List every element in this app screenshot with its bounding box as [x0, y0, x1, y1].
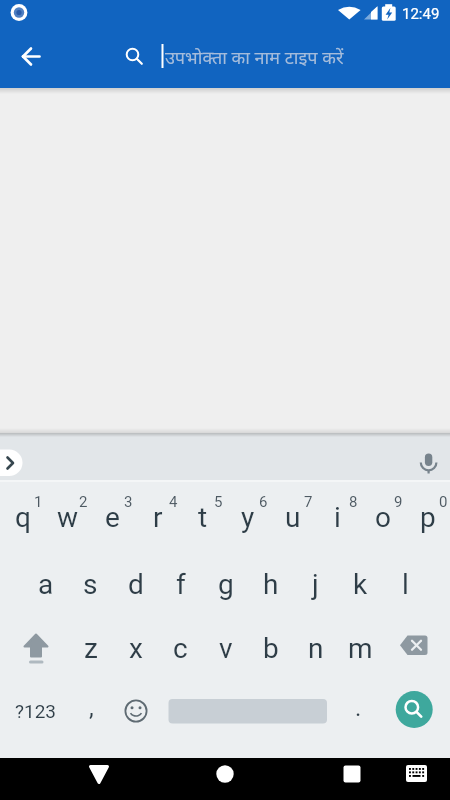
staticText: e: [105, 501, 120, 534]
staticText: 4: [169, 493, 178, 508]
staticText: g: [218, 568, 234, 601]
button[interactable]: [0, 758, 130, 800]
button[interactable]: g: [203, 554, 248, 614]
staticText: l: [402, 568, 409, 601]
button[interactable]: s: [68, 554, 113, 614]
staticText: s: [83, 568, 98, 601]
button[interactable]: w: [45, 487, 90, 547]
button[interactable]: q: [0, 487, 45, 547]
staticText: उपभोक्ता का नाम टाइप करें: [165, 45, 344, 70]
button[interactable]: [390, 758, 450, 800]
staticText: v: [219, 632, 233, 665]
button[interactable]: c: [158, 618, 203, 678]
button[interactable]: [0, 433, 44, 481]
button[interactable]: h: [248, 554, 293, 614]
button[interactable]: r: [135, 487, 180, 547]
button[interactable]: z: [68, 618, 113, 678]
button[interactable]: p: [405, 487, 450, 547]
button[interactable]: i: [315, 487, 360, 547]
button[interactable]: n: [293, 618, 338, 678]
staticText: n: [308, 632, 324, 665]
staticText: 5: [214, 493, 223, 508]
button[interactable]: m: [338, 618, 383, 678]
button[interactable]: a: [23, 554, 68, 614]
staticText: 8: [349, 493, 358, 508]
button[interactable]: [406, 433, 450, 481]
staticText: t: [198, 501, 208, 534]
button[interactable]: x: [113, 618, 158, 678]
button[interactable]: [168, 689, 327, 735]
staticText: 7: [304, 493, 313, 508]
button[interactable]: j: [293, 554, 338, 614]
staticText: r: [153, 501, 163, 534]
button[interactable]: u: [270, 487, 315, 547]
button[interactable]: v: [203, 618, 248, 678]
staticText: m: [348, 632, 373, 665]
staticText: w: [57, 501, 79, 534]
staticText: p: [420, 501, 436, 534]
staticText: h: [263, 568, 279, 601]
staticText: i: [334, 501, 341, 534]
button[interactable]: [13, 623, 59, 669]
staticText: a: [38, 568, 54, 601]
staticText: b: [263, 632, 279, 665]
button[interactable]: [395, 623, 441, 669]
staticText: 3: [124, 493, 133, 508]
staticText: z: [84, 632, 98, 665]
button[interactable]: k: [338, 554, 383, 614]
button[interactable]: b: [248, 618, 293, 678]
staticText: f: [176, 568, 186, 601]
button[interactable]: d: [113, 554, 158, 614]
button[interactable]: o: [360, 487, 405, 547]
button[interactable]: y: [225, 487, 270, 547]
button[interactable]: [113, 689, 159, 735]
staticText: 2: [79, 493, 88, 508]
button[interactable]: e: [90, 487, 135, 547]
staticText: c: [173, 632, 188, 665]
button[interactable]: [260, 758, 390, 800]
staticText: j: [312, 568, 319, 601]
staticText: q: [15, 501, 31, 534]
staticText: 0: [439, 493, 448, 508]
staticText: o: [375, 501, 391, 534]
button[interactable]: [8, 34, 54, 80]
staticText: u: [285, 501, 301, 534]
button[interactable]: t: [180, 487, 225, 547]
staticText: ,: [89, 694, 94, 722]
staticText: .: [355, 694, 362, 722]
staticText: 12:49: [402, 5, 440, 23]
button[interactable]: [395, 691, 433, 729]
staticText: ?123: [15, 700, 57, 722]
staticText: y: [241, 501, 255, 534]
button[interactable]: l: [383, 554, 428, 614]
staticText: k: [353, 568, 368, 601]
staticText: d: [128, 568, 144, 601]
staticText: x: [129, 632, 143, 665]
staticText: 6: [259, 493, 268, 508]
button[interactable]: उपभोक्ता का नाम टाइप करें: [165, 39, 395, 75]
button[interactable]: ?123: [12, 697, 59, 725]
button[interactable]: f: [158, 554, 203, 614]
staticText: 9: [394, 493, 403, 508]
button[interactable]: [130, 758, 260, 800]
staticText: 1: [34, 493, 43, 508]
